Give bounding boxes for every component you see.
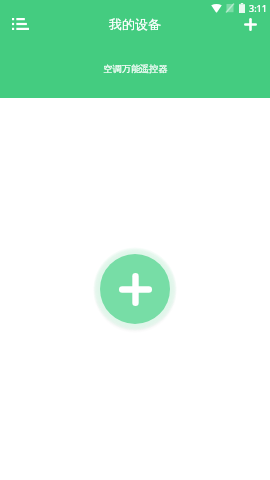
button[interactable]: Add device bbox=[100, 254, 170, 324]
staticText: 我的设备 bbox=[109, 16, 161, 32]
button[interactable]: Menu bbox=[3, 7, 37, 41]
staticText: 空调万能遥控器 bbox=[103, 63, 168, 75]
button[interactable]: 空调万能遥控器 bbox=[89, 57, 182, 81]
staticText: 3:11 bbox=[249, 2, 267, 14]
button[interactable]: Add device bbox=[233, 7, 267, 41]
